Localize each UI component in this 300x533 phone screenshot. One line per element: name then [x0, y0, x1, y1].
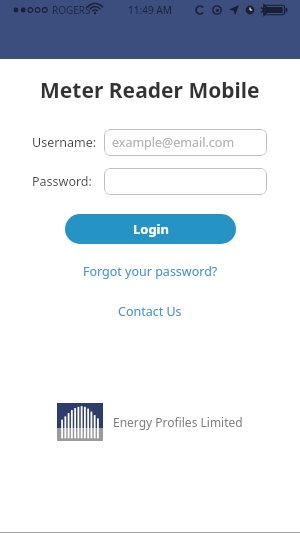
button[interactable]: Forgot your password? — [77, 261, 224, 282]
staticText: Meter Reader Mobile — [40, 76, 260, 105]
button[interactable]: Contact Us — [112, 301, 188, 322]
staticText: example@email.com — [112, 134, 235, 151]
button[interactable]: Login — [65, 214, 236, 244]
staticText: Forgot your password? — [83, 263, 218, 280]
staticText: ROGERS — [52, 3, 91, 17]
staticText: Username: — [32, 134, 97, 151]
staticText: Contact Us — [118, 303, 182, 320]
staticText: 11:49 AM — [128, 3, 172, 17]
button[interactable]: example@email.com — [104, 129, 267, 156]
staticText: Login — [133, 220, 169, 238]
button[interactable] — [104, 168, 267, 195]
staticText: Password: — [32, 173, 92, 190]
staticText: Energy Profiles Limited — [113, 414, 243, 430]
